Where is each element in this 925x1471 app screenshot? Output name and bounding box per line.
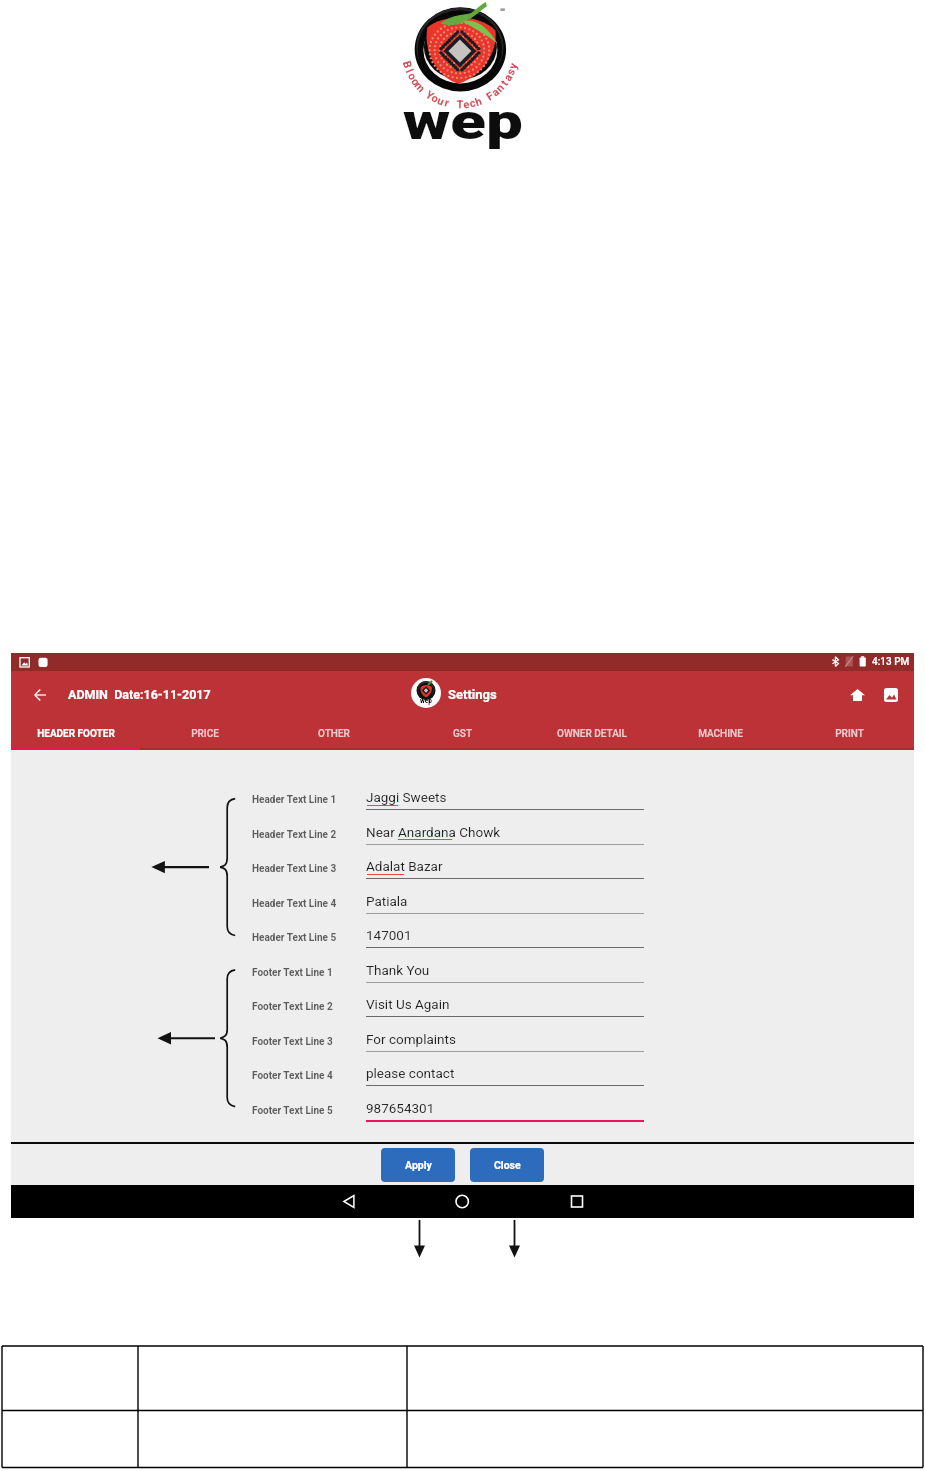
staticText: Header Text Line 4 (252, 898, 337, 910)
button[interactable]: HEADER FOOTER (11, 719, 140, 750)
staticText: 987654301 (366, 1100, 435, 1116)
staticText: wep (420, 697, 432, 705)
staticText: 4:13 PM (872, 656, 910, 668)
staticText: Jaggi Sweets (366, 789, 447, 805)
button[interactable]: Close (470, 1148, 544, 1182)
staticText: ADMIN Date:16-11-2017 (68, 687, 211, 702)
staticText: HEADER FOOTER (37, 728, 115, 740)
staticText: For complaints (366, 1031, 456, 1047)
button[interactable]: Apply (381, 1148, 455, 1182)
staticText: Header Text Line 2 (252, 829, 337, 841)
staticText: 147001 (366, 927, 412, 943)
staticText: Thank You (366, 962, 430, 978)
staticText: GST (453, 728, 472, 740)
staticText: Patiala (366, 893, 408, 909)
staticText: PRINT (835, 728, 864, 740)
button[interactable]: MACHINE (656, 719, 785, 750)
button[interactable]: GST (398, 719, 527, 750)
button[interactable]: Back (24, 675, 56, 715)
button[interactable]: PRICE (140, 719, 269, 750)
staticText: OTHER (318, 728, 350, 740)
staticText: MACHINE (698, 728, 743, 740)
staticText: Settings (448, 687, 497, 702)
staticText: Footer Text Line 5 (252, 1105, 333, 1117)
staticText: please contact (366, 1065, 455, 1081)
staticText: Header Text Line 5 (252, 932, 337, 944)
button[interactable]: Home (843, 681, 871, 709)
staticText: Header Text Line 1 (252, 794, 337, 806)
staticText: wep (403, 93, 523, 152)
staticText: PRICE (191, 728, 219, 740)
staticText: Apply (405, 1159, 432, 1171)
button[interactable]: OTHER (269, 719, 398, 750)
staticText: Header Text Line 3 (252, 863, 337, 875)
staticText: Footer Text Line 3 (252, 1036, 333, 1048)
button[interactable]: PRINT (785, 719, 914, 750)
staticText: Visit Us Again (366, 996, 450, 1012)
staticText: Adalat Bazar (366, 858, 443, 874)
staticText: Footer Text Line 4 (252, 1070, 333, 1082)
staticText: Close (494, 1159, 521, 1171)
staticText: Footer Text Line 1 (252, 967, 333, 979)
staticText: Footer Text Line 2 (252, 1001, 333, 1013)
staticText: Near Anardana Chowk (366, 824, 501, 840)
button[interactable]: Gallery (877, 681, 905, 709)
button[interactable]: OWNER DETAIL (527, 719, 656, 750)
staticText: OWNER DETAIL (557, 728, 627, 740)
